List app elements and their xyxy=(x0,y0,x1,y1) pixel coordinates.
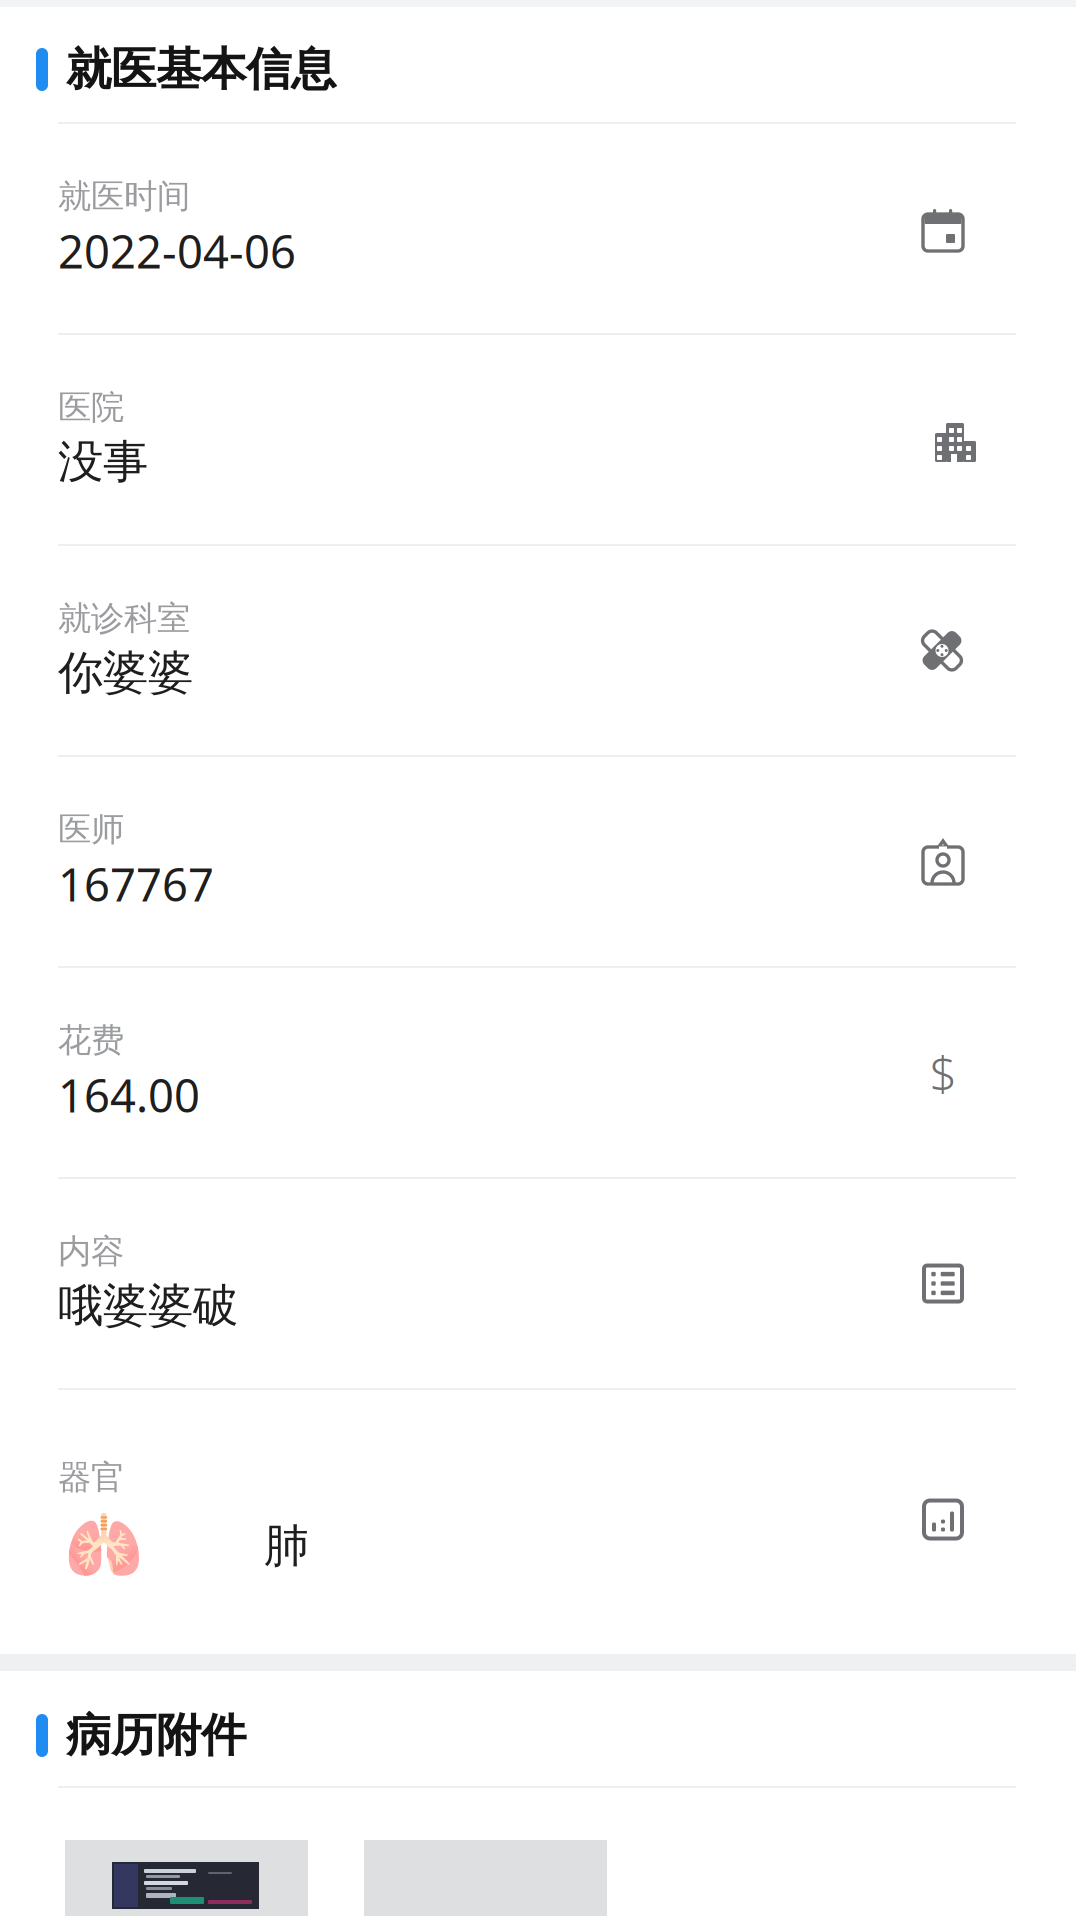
button[interactable]: 内容 xyxy=(0,1179,1076,1388)
staticText: 你婆婆 xyxy=(58,645,193,701)
button[interactable]: 病历附件图片 1 xyxy=(65,1840,308,1916)
staticText: 肺 xyxy=(264,1518,309,1574)
staticText: 医院 xyxy=(58,387,124,428)
staticText: 没事 xyxy=(58,434,148,490)
staticText: $ xyxy=(929,1041,956,1104)
button[interactable]: 就诊科室 xyxy=(0,546,1076,755)
button[interactable]: 就医时间 xyxy=(0,124,1076,333)
staticText: 医师 xyxy=(58,809,124,850)
staticText: 就诊科室 xyxy=(58,598,190,639)
staticText: 2022-04-06 xyxy=(58,221,296,281)
staticText: 器官 xyxy=(58,1457,124,1498)
button[interactable]: 器官 xyxy=(0,1390,1076,1654)
staticText: 就医时间 xyxy=(58,176,190,217)
button[interactable]: 医院 xyxy=(0,335,1076,544)
button[interactable]: 花费 xyxy=(0,968,1076,1177)
staticText: 就医基本信息 xyxy=(66,42,336,97)
staticText: 164.00 xyxy=(58,1065,200,1125)
staticText: 花费 xyxy=(58,1020,124,1061)
button[interactable]: 医师 xyxy=(0,757,1076,966)
staticText: 病历附件 xyxy=(66,1708,246,1763)
staticText: 167767 xyxy=(58,854,214,914)
staticText: 哦婆婆破 xyxy=(58,1278,238,1334)
staticText: 🫁 xyxy=(64,1509,144,1582)
staticText: 内容 xyxy=(58,1231,124,1272)
